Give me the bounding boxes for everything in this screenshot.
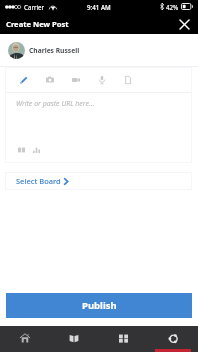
button[interactable]: Close — [176, 16, 192, 32]
button[interactable]: Profile — [148, 326, 198, 352]
button[interactable]: Publish — [6, 293, 192, 318]
button[interactable]: Quote — [14, 143, 28, 157]
staticText: Create New Post — [6, 19, 69, 29]
staticText: Publish — [82, 299, 117, 312]
button[interactable]: Attach document — [115, 67, 141, 92]
button[interactable]: Charles Russell — [8, 34, 198, 66]
button[interactable]: Record audio — [89, 67, 115, 92]
button[interactable]: Poll — [29, 143, 43, 157]
staticText: Charles Russell — [29, 46, 80, 55]
staticText: Carrier — [24, 3, 45, 11]
staticText: 42% — [166, 3, 179, 11]
button[interactable]: Library — [49, 326, 98, 352]
button[interactable]: Record video — [63, 67, 89, 92]
button[interactable]: Take photo — [37, 67, 63, 92]
button[interactable]: Boards — [98, 326, 148, 352]
staticText: Write or paste URL here... — [16, 99, 95, 109]
button[interactable]: Home — [0, 326, 49, 352]
staticText: 9:41 AM — [87, 3, 111, 11]
button[interactable]: Write or paste URL here... — [16, 93, 192, 115]
button[interactable]: Select Board — [16, 172, 192, 190]
staticText: Select Board — [16, 176, 61, 186]
button[interactable]: Write post — [11, 67, 37, 92]
